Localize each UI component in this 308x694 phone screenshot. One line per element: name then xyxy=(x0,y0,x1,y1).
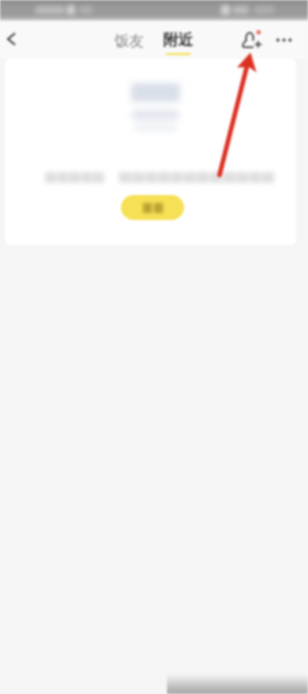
staticText: 饭友 xyxy=(114,32,144,51)
button[interactable]: 饭友 xyxy=(109,24,149,58)
button[interactable]: More options xyxy=(269,25,299,55)
button[interactable]: Back xyxy=(0,25,25,53)
staticText: 附近 xyxy=(163,31,193,50)
button[interactable]: 附近 xyxy=(156,26,200,60)
button[interactable]: Add friend xyxy=(237,24,267,54)
button[interactable] xyxy=(121,195,184,220)
